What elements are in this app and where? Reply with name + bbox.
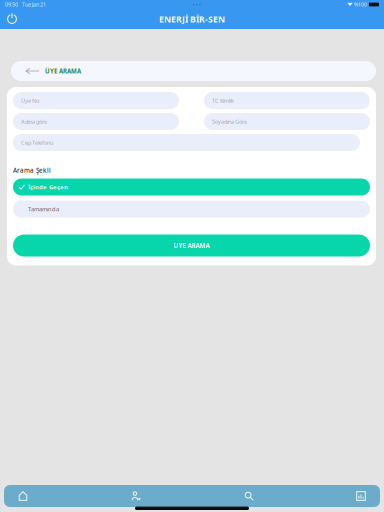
button[interactable]: Add Member	[79, 485, 192, 507]
button[interactable]: Home	[4, 485, 79, 507]
staticText: TC Kimlik	[212, 97, 234, 104]
staticText: Üye No	[21, 97, 39, 104]
staticText: ÜYE ARAMA	[173, 241, 209, 250]
staticText: 09:50	[5, 1, 18, 8]
button[interactable]: Power	[2, 9, 22, 29]
staticText: Adına göre	[21, 118, 47, 125]
staticText: %100	[354, 1, 367, 8]
button[interactable]: ÜYE ARAMA	[11, 61, 376, 81]
staticText: İçinde Geçen	[28, 183, 68, 191]
staticText: ÜYE ARAMA	[45, 67, 81, 75]
button[interactable]: Search	[192, 485, 305, 507]
staticText: Cep Telefonu	[21, 139, 53, 146]
button[interactable]: ÜYE ARAMA	[13, 234, 370, 256]
staticText: Tue Jan 21	[22, 1, 46, 8]
staticText: Soyadına Göre	[212, 118, 247, 125]
button[interactable]: İçinde Geçen	[13, 178, 370, 195]
staticText: Arama Şekli	[13, 166, 51, 174]
button[interactable]: Reports	[305, 485, 380, 507]
staticText: ENERJİ BİR-SEN	[159, 13, 225, 25]
button[interactable]: Tamamında	[13, 200, 370, 217]
staticText: Tamamında	[28, 205, 59, 213]
